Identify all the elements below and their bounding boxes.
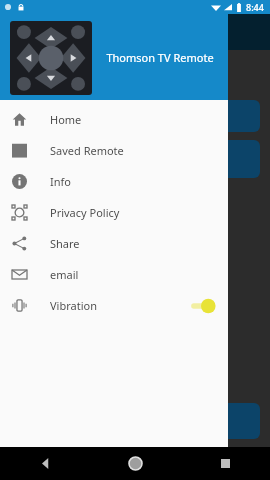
button[interactable]: Info: [0, 166, 228, 197]
staticText: Saved Remote: [50, 143, 124, 158]
button[interactable]: Recent apps: [180, 447, 270, 480]
button[interactable]: Saved Remote: [0, 135, 228, 166]
staticText: email: [50, 267, 79, 282]
staticText: Thomson Remote: [89, 152, 181, 167]
staticText: 8:44: [246, 1, 264, 13]
button[interactable]: Share: [10, 403, 260, 439]
staticText: Vibration: [50, 298, 97, 313]
staticText: Share: [50, 236, 80, 251]
button[interactable]: [188, 299, 214, 313]
button[interactable]: email: [0, 259, 228, 290]
button[interactable]: Vibration: [0, 290, 228, 321]
staticText: Privacy Policy: [50, 205, 120, 220]
button[interactable]: Home: [90, 447, 180, 480]
button[interactable]: [10, 100, 260, 132]
staticText: Info: [50, 174, 71, 189]
staticText: Thomson TV Remote: [106, 50, 214, 65]
button[interactable]: Privacy Policy: [0, 197, 228, 228]
button[interactable]: Home: [0, 104, 228, 135]
button[interactable]: Share: [0, 228, 228, 259]
staticText: Home: [50, 112, 82, 127]
button[interactable]: Back: [0, 447, 90, 480]
button[interactable]: Thomson Remote: [10, 140, 260, 178]
